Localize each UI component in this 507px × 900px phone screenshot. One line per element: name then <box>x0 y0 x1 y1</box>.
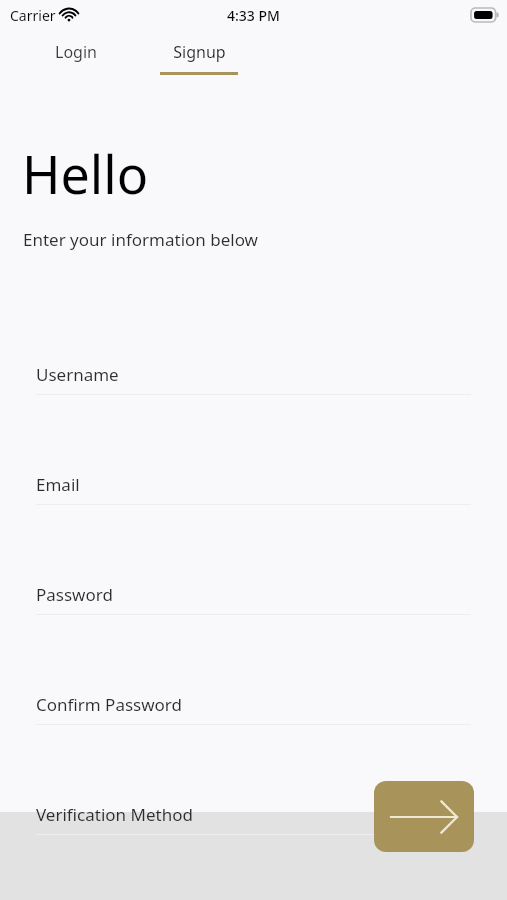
button[interactable]: Signup <box>149 30 249 80</box>
staticText: Confirm Password <box>36 693 182 716</box>
button[interactable]: Verification Method <box>36 803 471 835</box>
staticText: Hello <box>22 138 149 209</box>
staticText: 4:33 PM <box>227 6 280 25</box>
staticText: Signup <box>173 41 226 63</box>
staticText: Password <box>36 583 113 606</box>
staticText: Enter your information below <box>23 228 258 251</box>
button[interactable]: Email <box>36 473 471 505</box>
button[interactable]: Username <box>36 363 471 395</box>
button[interactable]: Login <box>26 30 126 80</box>
staticText: Login <box>55 41 97 63</box>
staticText: Username <box>36 363 119 386</box>
staticText: Carrier <box>10 6 56 25</box>
button[interactable]: Password <box>36 583 471 615</box>
button[interactable]: Confirm Password <box>36 693 471 725</box>
button[interactable]: Continue <box>374 781 474 852</box>
staticText: Email <box>36 473 80 496</box>
staticText: Verification Method <box>36 803 193 826</box>
